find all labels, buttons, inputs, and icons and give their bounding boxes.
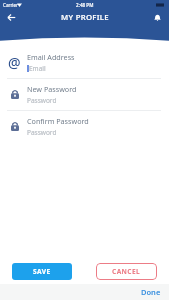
button[interactable]: @ [0, 46, 169, 78]
button[interactable]: CANCEL [96, 263, 157, 280]
staticText: @ [8, 53, 21, 72]
staticText: Password [27, 128, 57, 137]
button[interactable]: Notifications [151, 11, 164, 24]
button[interactable]: SAVE [12, 263, 72, 280]
button[interactable]: New Password [0, 78, 169, 110]
staticText: SAVE [33, 267, 51, 276]
staticText: Carrier [3, 2, 18, 8]
staticText: 2:48 PM [76, 2, 94, 8]
staticText: New Password [27, 84, 77, 94]
button[interactable]: Back [5, 11, 18, 24]
staticText: CANCEL [112, 267, 141, 276]
button[interactable]: Confirm Password [0, 110, 169, 142]
staticText: Password [27, 96, 57, 105]
button[interactable]: Done [141, 287, 161, 297]
staticText: Confirm Password [27, 116, 89, 126]
staticText: Email [29, 64, 46, 73]
staticText: MY PROFILE [61, 12, 109, 23]
staticText: Email Address [27, 52, 75, 62]
